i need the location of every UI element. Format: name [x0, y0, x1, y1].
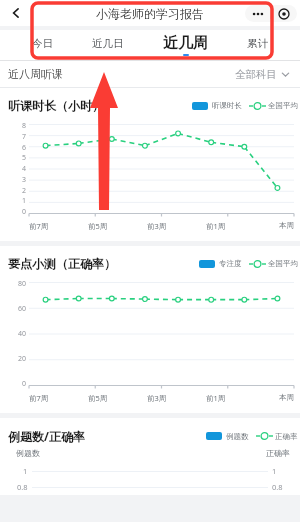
staticText: 0.8 — [272, 482, 283, 492]
staticText: 要点小测（正确率） — [8, 256, 116, 271]
staticText: 小海老师的学习报告 — [96, 6, 204, 21]
staticText: 前1周 — [206, 393, 226, 403]
button[interactable]: 近几日 — [90, 37, 126, 53]
staticText: 1 — [23, 466, 28, 476]
staticText: 0 — [21, 207, 26, 217]
staticText: 前7周 — [29, 221, 49, 231]
staticText: 前7周 — [29, 393, 49, 403]
staticText: 40 — [17, 329, 26, 339]
button[interactable]: 今日 — [30, 37, 55, 53]
staticText: 前3周 — [147, 393, 167, 403]
staticText: 1 — [21, 196, 26, 206]
staticText: 4 — [21, 164, 26, 174]
staticText: 前5周 — [88, 393, 108, 403]
staticText: 80 — [17, 279, 26, 289]
staticText: 6 — [21, 143, 26, 153]
staticText: 近八周听课 — [8, 67, 63, 81]
staticText: 前3周 — [147, 221, 167, 231]
staticText: 例题数/正确率 — [8, 428, 85, 444]
staticText: 累计 — [247, 37, 268, 50]
staticText: 近几周 — [163, 34, 208, 53]
staticText: 2 — [21, 186, 26, 196]
staticText: 本周 — [279, 221, 294, 230]
staticText: 今日 — [32, 37, 53, 50]
staticText: 前5周 — [88, 221, 108, 231]
button[interactable]: 全部科目 — [235, 68, 292, 81]
staticText: 全国平均 — [268, 259, 298, 268]
staticText: 专注度 — [219, 259, 242, 268]
staticText: 20 — [17, 354, 26, 364]
staticText: 8 — [21, 121, 26, 131]
staticText: 听课时长 — [212, 101, 242, 110]
staticText: 3 — [21, 175, 26, 185]
staticText: 正确率 — [266, 448, 290, 458]
staticText: 例题数 — [226, 432, 249, 441]
staticText: 近几日 — [92, 37, 124, 50]
staticText: 前1周 — [206, 221, 226, 231]
staticText: 正确率 — [275, 432, 298, 441]
button[interactable]: Back — [6, 3, 26, 23]
staticText: 60 — [17, 304, 26, 314]
staticText: 例题数 — [16, 448, 40, 458]
staticText: 全部科目 — [235, 68, 277, 81]
staticText: 全国平均 — [268, 101, 298, 110]
staticText: 本周 — [279, 393, 294, 402]
staticText: 5 — [21, 153, 26, 163]
button[interactable]: 近几周 — [161, 34, 210, 56]
button[interactable]: More — [245, 5, 270, 22]
button[interactable]: 累计 — [245, 37, 270, 53]
staticText: 1 — [272, 466, 277, 476]
staticText: 听课时长（小时） — [8, 98, 104, 113]
button[interactable]: Close — [271, 5, 297, 22]
staticText: 0.8 — [17, 482, 28, 492]
staticText: 7 — [21, 132, 26, 142]
staticText: 0 — [21, 379, 26, 389]
